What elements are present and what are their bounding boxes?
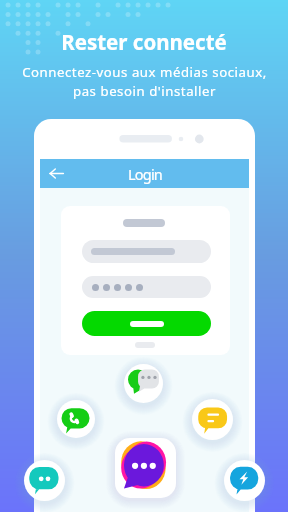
button[interactable]: Login (82, 311, 211, 336)
staticText: Rester connecté (61, 28, 227, 56)
button[interactable]: Messages (115, 355, 172, 412)
button[interactable]: Username field (82, 240, 211, 263)
button[interactable]: Messenger Lite (215, 451, 274, 510)
staticText: Connectez-vous aux médias sociaux, pas b… (22, 63, 267, 99)
button[interactable]: Chat (15, 451, 74, 510)
button[interactable]: Password field (82, 276, 211, 298)
button[interactable]: Back (42, 159, 71, 188)
button[interactable]: KakaoTalk (183, 390, 242, 449)
button[interactable]: Chat app (106, 429, 185, 507)
button[interactable]: WhatsApp (48, 391, 104, 447)
staticText: Login (128, 164, 162, 184)
